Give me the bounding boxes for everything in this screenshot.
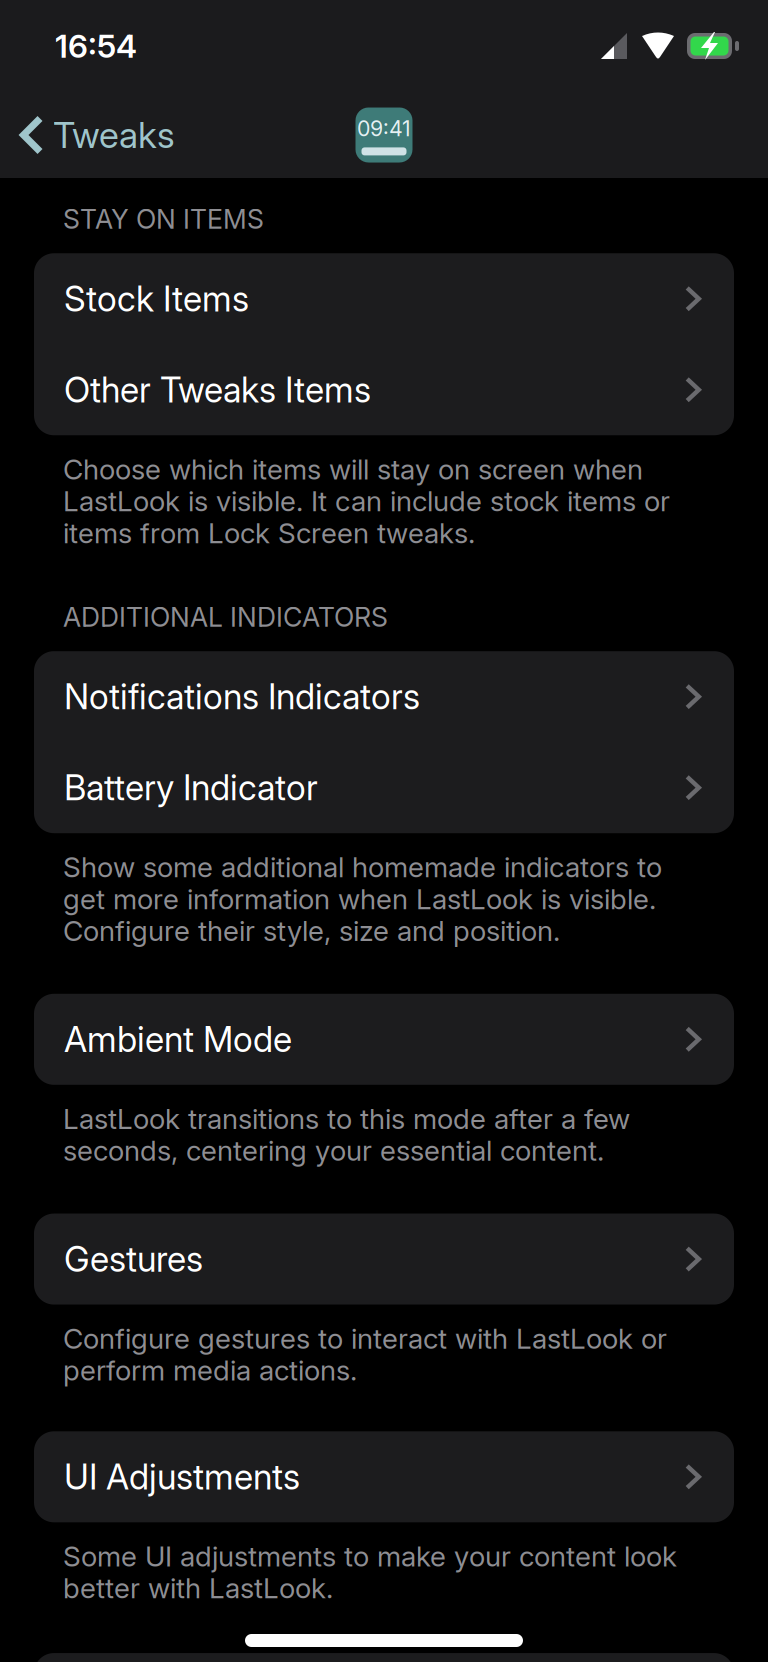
staticText: Gestures: [64, 1238, 203, 1280]
staticText: Notifications Indicators: [64, 676, 420, 718]
staticText: Choose which items will stay on screen w…: [63, 452, 670, 550]
staticText: LastLook transitions to this mode after …: [63, 1102, 630, 1168]
button[interactable]: Advanced: [34, 1653, 734, 1662]
button[interactable]: Other Tweaks Items: [34, 344, 734, 435]
staticText: Some UI adjustments to make your content…: [63, 1539, 677, 1605]
staticText: 09:41: [357, 116, 411, 141]
staticText: 16:54: [55, 27, 137, 65]
staticText: Show some additional homemade indicators…: [63, 850, 662, 948]
staticText: Stock Items: [64, 278, 249, 320]
staticText: Other Tweaks Items: [64, 369, 371, 411]
staticText: ADDITIONAL INDICATORS: [63, 601, 388, 633]
button[interactable]: Gestures: [34, 1214, 734, 1305]
button[interactable]: Battery Indicator: [34, 742, 734, 833]
button[interactable]: Tweaks: [0, 103, 189, 167]
staticText: Battery Indicator: [64, 767, 318, 809]
staticText: STAY ON ITEMS: [63, 203, 264, 235]
staticText: UI Adjustments: [64, 1456, 300, 1498]
staticText: Ambient Mode: [64, 1018, 292, 1060]
button[interactable]: Stock Items: [34, 253, 734, 344]
button[interactable]: Ambient Mode: [34, 994, 734, 1085]
staticText: Configure gestures to interact with Last…: [63, 1322, 667, 1387]
staticText: Tweaks: [53, 113, 175, 157]
button[interactable]: Notifications Indicators: [34, 651, 734, 742]
button[interactable]: UI Adjustments: [34, 1431, 734, 1522]
